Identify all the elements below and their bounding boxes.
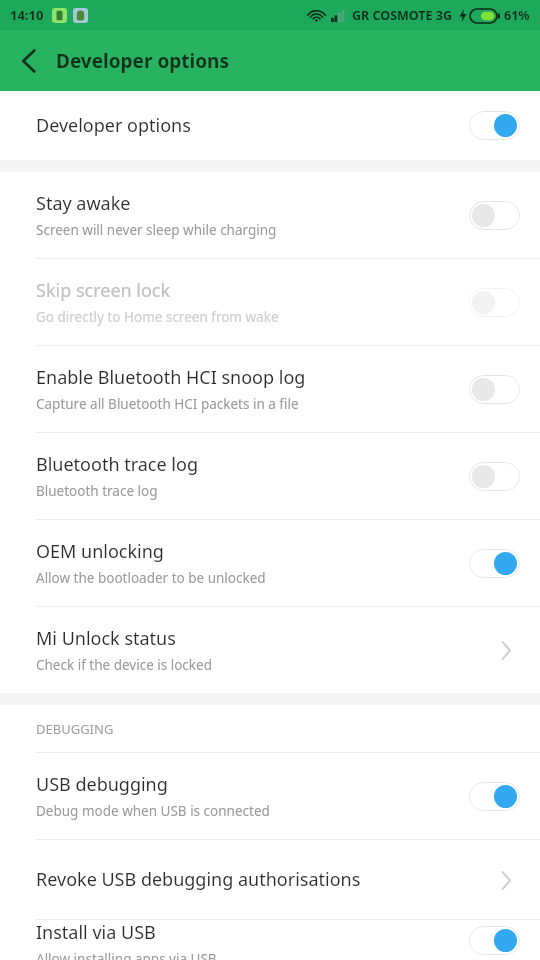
staticText: 61% <box>504 7 530 24</box>
staticText: Mi Unlock status <box>36 626 176 651</box>
staticText: Enable Bluetooth HCI snoop log <box>36 365 306 390</box>
other: Toggle off <box>469 288 520 317</box>
other: Toggle on <box>469 549 520 578</box>
button[interactable]: USB debugging <box>0 753 540 839</box>
staticText: Stay awake <box>36 191 131 216</box>
staticText: Check if the device is locked <box>36 656 212 674</box>
other: Toggle on <box>469 111 520 140</box>
staticText: Debug mode when USB is connected <box>36 802 270 820</box>
staticText: 14:10 <box>10 6 44 24</box>
staticText: Allow the bootloader to be unlocked <box>36 569 266 587</box>
other: Toggle off <box>469 375 520 404</box>
staticText: Capture all Bluetooth HCI packets in a f… <box>36 395 299 413</box>
button[interactable]: Enable Bluetooth HCI snoop log <box>0 346 540 432</box>
staticText: Screen will never sleep while charging <box>36 221 277 239</box>
button[interactable]: Install via USB <box>0 920 540 960</box>
staticText: Bluetooth trace log <box>36 452 198 477</box>
staticText: Developer options <box>36 113 191 138</box>
staticText: Bluetooth trace log <box>36 482 158 500</box>
other: Toggle on <box>469 926 520 955</box>
button[interactable]: Bluetooth trace log <box>0 433 540 519</box>
staticText: DEBUGGING <box>36 720 114 738</box>
staticText: Allow installing apps via USB <box>36 950 217 960</box>
other: Open <box>492 866 520 894</box>
staticText: GR COSMOTE 3G <box>352 7 453 24</box>
staticText: Go directly to Home screen from wake <box>36 308 279 326</box>
staticText: Revoke USB debugging authorisations <box>36 867 361 892</box>
staticText: Skip screen lock <box>36 278 171 303</box>
other: Toggle on <box>469 782 520 811</box>
button[interactable]: Back <box>0 30 56 91</box>
staticText: OEM unlocking <box>36 539 164 564</box>
button[interactable]: Developer options <box>0 91 540 160</box>
button[interactable]: OEM unlocking <box>0 520 540 606</box>
other: Toggle off <box>469 462 520 491</box>
staticText: Developer options <box>56 48 229 74</box>
button[interactable]: Skip screen lock <box>0 259 540 345</box>
button[interactable]: Revoke USB debugging authorisations <box>0 840 540 919</box>
button[interactable]: Stay awake <box>0 172 540 258</box>
button[interactable]: Mi Unlock status <box>0 607 540 693</box>
staticText: USB debugging <box>36 772 168 797</box>
staticText: Install via USB <box>36 920 156 945</box>
other: Toggle off <box>469 201 520 230</box>
other: Open <box>492 636 520 664</box>
